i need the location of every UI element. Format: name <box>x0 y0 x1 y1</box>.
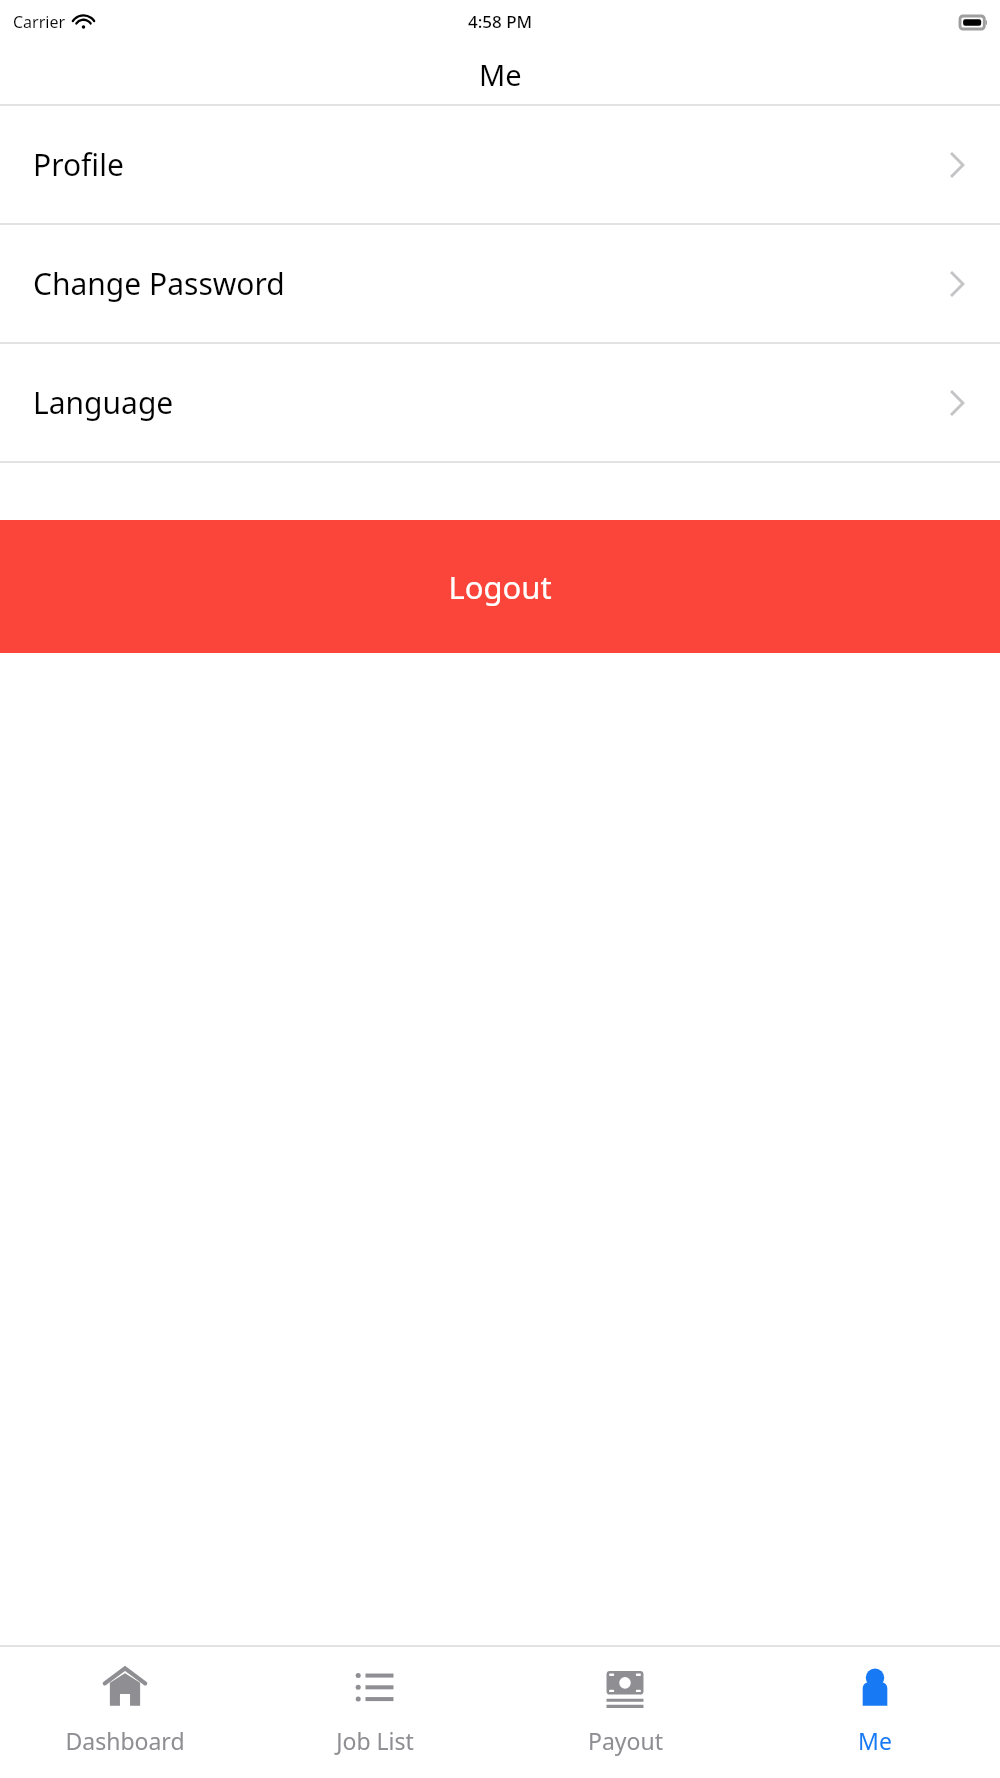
button[interactable]: Language <box>0 344 1000 461</box>
staticText: Payout <box>588 1725 663 1756</box>
button[interactable]: Logout <box>0 520 1000 653</box>
button[interactable]: Job List <box>250 1647 500 1778</box>
staticText: Profile <box>33 144 124 185</box>
staticText: Job List <box>336 1725 414 1756</box>
staticText: Me <box>479 55 522 94</box>
staticText: Change Password <box>33 263 285 304</box>
button[interactable]: Profile <box>0 106 1000 223</box>
button[interactable]: Payout <box>500 1647 750 1778</box>
button[interactable]: Dashboard <box>0 1647 250 1778</box>
staticText: 4:58 PM <box>468 10 533 33</box>
staticText: Dashboard <box>65 1725 185 1756</box>
staticText: Logout <box>448 566 552 608</box>
button[interactable]: Me <box>750 1647 1000 1778</box>
staticText: Language <box>33 382 174 423</box>
staticText: Carrier <box>13 11 66 33</box>
staticText: Me <box>858 1725 892 1756</box>
button[interactable]: Change Password <box>0 225 1000 342</box>
